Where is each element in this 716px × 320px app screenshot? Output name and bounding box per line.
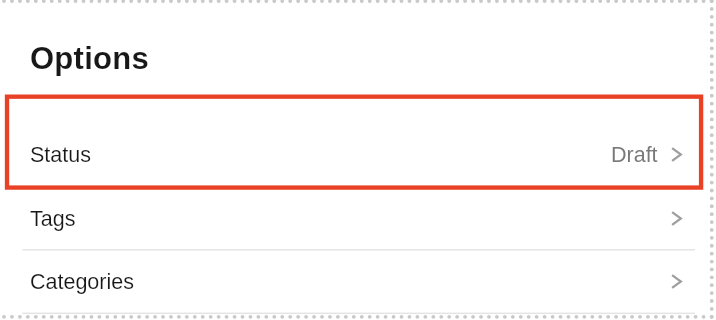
other: Open Status (671, 147, 682, 162)
other: Open Categories (671, 274, 682, 289)
staticText: Options (30, 41, 149, 76)
staticText: Categories (30, 270, 134, 294)
button[interactable]: Status (0, 123, 716, 186)
button[interactable]: Categories (0, 250, 716, 312)
staticText: Draft (611, 143, 658, 167)
other: Open Tags (671, 211, 682, 226)
staticText: Status (30, 143, 91, 167)
staticText: Tags (30, 207, 76, 231)
button[interactable]: Tags (0, 187, 716, 249)
